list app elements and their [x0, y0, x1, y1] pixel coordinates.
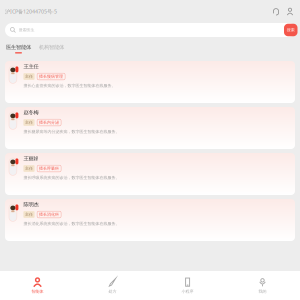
button[interactable]: 机构智能体 [39, 44, 64, 54]
button[interactable]: 搜索 [284, 24, 297, 36]
button[interactable]: 我的 [286, 7, 294, 15]
staticText: 擅长消化系统疾病的诊治，数字医生智能体在线服务。 [23, 221, 119, 226]
staticText: 擅长消化科 [39, 212, 59, 217]
staticText: 擅长糖尿病等内分泌疾病，数字医生智能体在线服务。 [23, 129, 119, 134]
button[interactable]: 小程序 [150, 271, 225, 300]
staticText: 王主任 [23, 63, 38, 70]
staticText: 陈明杰 [23, 201, 38, 208]
staticText: 赵冬梅 [23, 109, 38, 116]
staticText: 主任 [25, 74, 33, 79]
staticText: 擅长心血管疾病的诊治，数字医生智能体在线服务。 [23, 83, 115, 88]
staticText: 王丽娟 [23, 155, 38, 162]
button[interactable]: 陈明杰 [5, 199, 295, 241]
staticText: 擅长呼吸系统疾病的诊治，数字医生智能体在线服务。 [23, 175, 119, 180]
button[interactable]: 客服 [272, 7, 280, 15]
button[interactable]: 赵冬梅 [5, 107, 295, 149]
staticText: 擅长内分泌 [39, 120, 59, 125]
staticText: 医生智能体 [6, 44, 31, 51]
button[interactable]: 智能体 [0, 271, 75, 300]
staticText: 主任 [25, 120, 33, 125]
staticText: 沪ICP备12044705号-5 [5, 8, 57, 15]
button[interactable]: 王主任 [5, 61, 295, 103]
staticText: 我的 [258, 289, 266, 294]
button[interactable]: 我的 [225, 271, 300, 300]
staticText: 主任 [25, 166, 33, 171]
button[interactable]: 处方 [75, 271, 150, 300]
staticText: 智能体 [31, 289, 43, 294]
staticText: 小程序 [181, 289, 193, 294]
button[interactable]: 王丽娟 [5, 153, 295, 195]
button[interactable]: 医生智能体 [6, 44, 31, 54]
staticText: 擅长呼吸科 [39, 166, 59, 171]
staticText: 擅长慢病管理 [39, 74, 63, 79]
staticText: 搜索医生 [18, 27, 34, 32]
staticText: 机构智能体 [39, 44, 64, 51]
staticText: 主任 [25, 212, 33, 217]
staticText: 搜索 [287, 27, 295, 32]
staticText: 处方 [108, 289, 116, 294]
